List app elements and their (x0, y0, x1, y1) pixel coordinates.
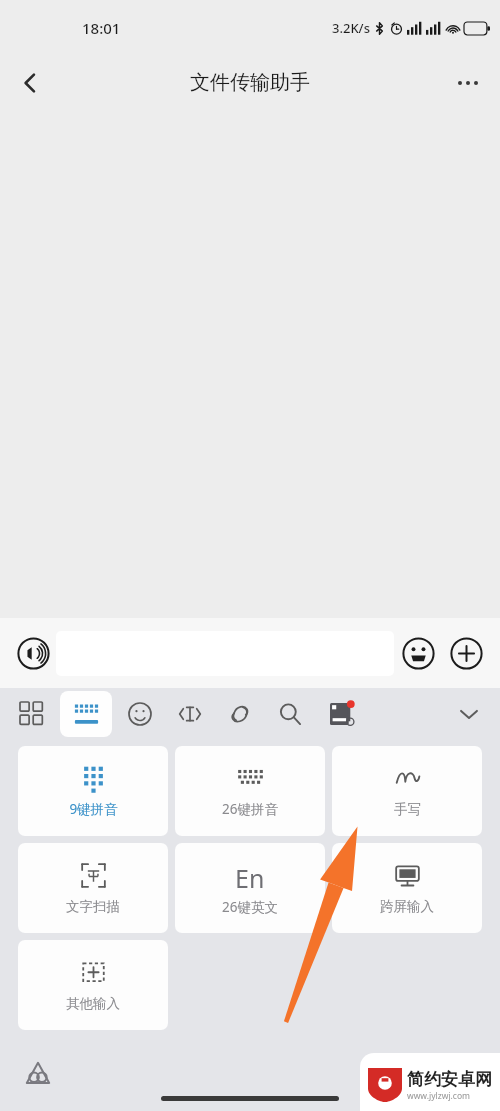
staticText: www.jylzwj.com (407, 1090, 471, 1102)
staticText: 26键拼音 (222, 800, 278, 818)
button[interactable]: Keyboard (60, 691, 112, 737)
button[interactable]: Store (322, 693, 364, 735)
button[interactable]: Clipboard link (222, 696, 258, 732)
staticText: 文件传输助手 (190, 70, 310, 95)
button[interactable]: 9键拼音 (18, 746, 168, 836)
staticText: En (235, 861, 265, 895)
button[interactable]: Input method logo (18, 1054, 58, 1094)
button[interactable]: Voice input (10, 630, 56, 676)
staticText: 手写 (394, 801, 421, 818)
button[interactable]: Emoji (122, 696, 158, 732)
staticText: 26键英文 (222, 898, 278, 916)
staticText: 跨屏输入 (380, 898, 434, 915)
button[interactable]: More functions (442, 629, 490, 677)
button[interactable]: 跨屏输入 (332, 843, 482, 933)
button[interactable]: More options (444, 59, 492, 107)
staticText: 9键拼音 (69, 800, 118, 818)
button[interactable]: 26键拼音 (175, 746, 325, 836)
button[interactable]: 文字扫描 (18, 843, 168, 933)
button[interactable]: Search (272, 696, 308, 732)
staticText: 18:01 (82, 18, 121, 38)
button[interactable]: Keyboard layouts (14, 696, 50, 732)
button[interactable]: 其他输入 (18, 940, 168, 1030)
staticText: 其他输入 (66, 995, 120, 1012)
button[interactable]: Text cursor (172, 696, 208, 732)
button[interactable]: En (175, 843, 325, 933)
button[interactable]: Back (6, 59, 54, 107)
staticText: 文字扫描 (66, 898, 120, 915)
button[interactable]: 手写 (332, 746, 482, 836)
button[interactable]: Collapse (446, 691, 492, 737)
staticText: 简约安卓网 (407, 1069, 492, 1090)
button[interactable]: Emoji (394, 629, 442, 677)
staticText: 3.2K/s (332, 19, 370, 37)
